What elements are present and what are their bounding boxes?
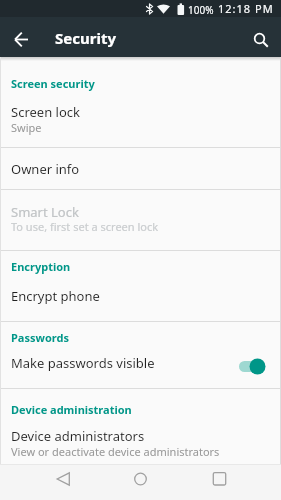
- button[interactable]: Make passwords visible: [0, 343, 281, 388]
- staticText: Encrypt phone: [11, 287, 100, 305]
- button[interactable]: Device administrators: [0, 415, 281, 464]
- button[interactable]: Owner info: [0, 148, 281, 189]
- button[interactable]: Encrypt phone: [0, 276, 281, 321]
- staticText: Device administration: [11, 402, 132, 417]
- staticText: View or deactivate device administrators: [11, 444, 220, 459]
- button[interactable]: [8, 17, 36, 57]
- staticText: Encryption: [11, 259, 71, 274]
- button[interactable]: Smart Lock: [0, 190, 281, 250]
- button[interactable]: [126, 464, 156, 500]
- staticText: Screen security: [11, 76, 95, 91]
- staticText: Screen lock: [11, 103, 80, 121]
- staticText: Security: [55, 28, 116, 48]
- staticText: To use, first set a screen lock: [11, 219, 159, 234]
- staticText: Make passwords visible: [11, 354, 155, 372]
- staticText: Swipe: [11, 120, 42, 135]
- button[interactable]: [245, 17, 275, 57]
- staticText: 100%: [188, 3, 214, 17]
- button[interactable]: Screen lock: [0, 92, 281, 147]
- staticText: Owner info: [11, 160, 80, 178]
- staticText: Smart Lock: [11, 203, 79, 221]
- button[interactable]: [48, 464, 78, 500]
- staticText: Passwords: [11, 330, 69, 345]
- staticText: 12:18 PM: [218, 1, 274, 16]
- button[interactable]: [204, 464, 234, 500]
- staticText: Device administrators: [11, 427, 145, 445]
